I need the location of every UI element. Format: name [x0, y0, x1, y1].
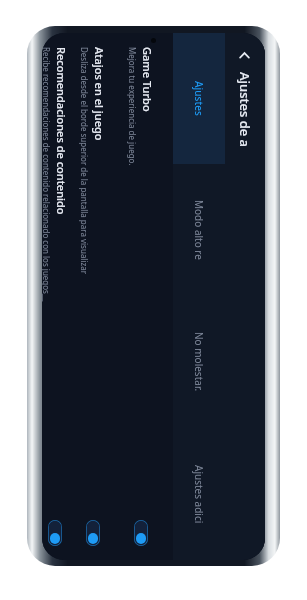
- button[interactable]: Game Turbo: [117, 33, 165, 560]
- button[interactable]: Ajustes: [173, 33, 225, 164]
- staticText: Ajustes: [192, 81, 206, 116]
- staticText: Desliza desde el borde superior de la pa…: [79, 47, 90, 275]
- button[interactable]: Modo alto re: [173, 164, 225, 296]
- staticText: Atajos en el juego: [92, 47, 107, 141]
- staticText: Game Turbo: [140, 47, 155, 112]
- button[interactable]: Back: [231, 41, 259, 69]
- button[interactable]: Toggle setting: [48, 520, 62, 546]
- staticText: Ajustes de a: [236, 72, 254, 147]
- button[interactable]: Recomendaciones de contenido: [42, 33, 69, 560]
- button[interactable]: No molestar.: [173, 296, 225, 428]
- button[interactable]: Atajos en el juego: [69, 33, 117, 560]
- staticText: Mejora tu experiencia de juego.: [127, 47, 138, 166]
- button[interactable]: Toggle setting: [86, 520, 100, 546]
- button[interactable]: Ajustes adici: [173, 428, 225, 560]
- staticText: Ajustes adici: [192, 465, 206, 524]
- staticText: No molestar.: [192, 332, 206, 392]
- staticText: Recibe recomendaciones de contenido rela…: [42, 47, 52, 294]
- staticText: Recomendaciones de contenido: [54, 47, 69, 215]
- staticText: Modo alto re: [192, 200, 206, 260]
- button[interactable]: Toggle setting: [134, 520, 148, 546]
